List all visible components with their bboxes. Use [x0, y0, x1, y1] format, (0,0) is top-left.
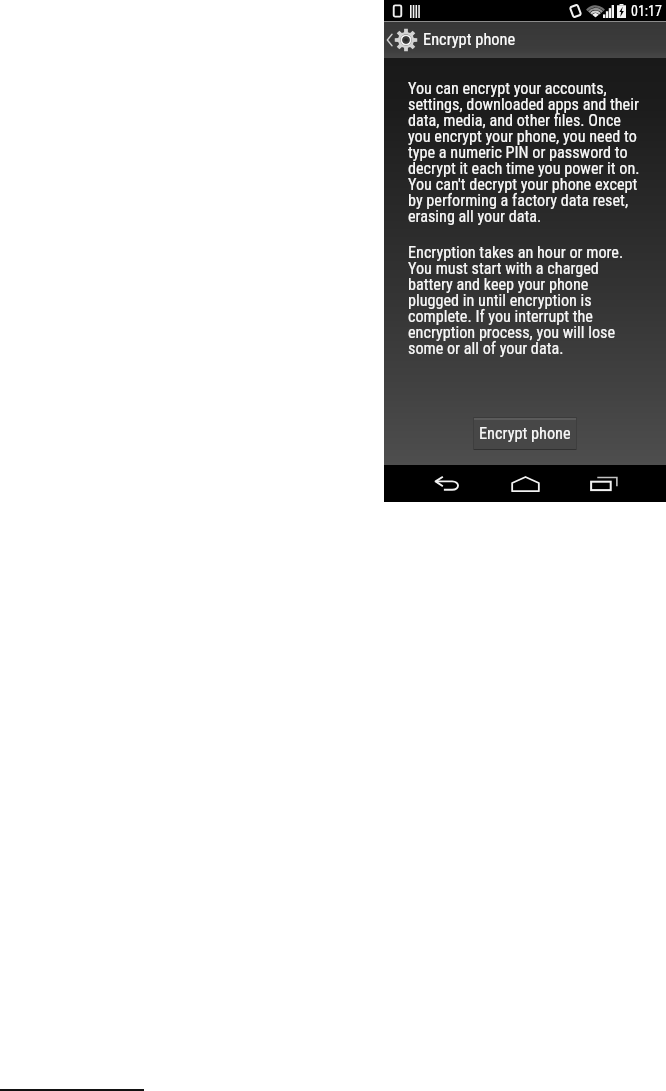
staticText: 01:17 [631, 3, 662, 19]
staticText: Encrypt phone [423, 30, 516, 49]
button[interactable]: Encrypt phone [473, 417, 577, 450]
button[interactable]: Recent apps [577, 465, 631, 502]
button[interactable]: Navigate up [384, 21, 423, 58]
staticText: Encryption takes an hour or more. You mu… [408, 243, 641, 358]
staticText: Encrypt phone [479, 424, 571, 443]
button[interactable]: Home [498, 465, 552, 502]
button[interactable]: Back [420, 465, 473, 502]
staticText: You can encrypt your accounts, settings,… [408, 79, 641, 226]
